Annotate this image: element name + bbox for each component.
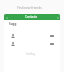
button[interactable]: Search [56, 16, 59, 19]
staticText: Sugg [9, 22, 17, 26]
staticText: Find new friends [17, 6, 42, 10]
staticText: Contacts [25, 15, 38, 19]
button[interactable] [50, 43, 54, 45]
staticText: loading [26, 52, 36, 56]
button[interactable] [4, 32, 60, 40]
button[interactable]: Navigate up [5, 16, 8, 19]
button[interactable] [4, 40, 60, 48]
button[interactable] [50, 35, 54, 37]
